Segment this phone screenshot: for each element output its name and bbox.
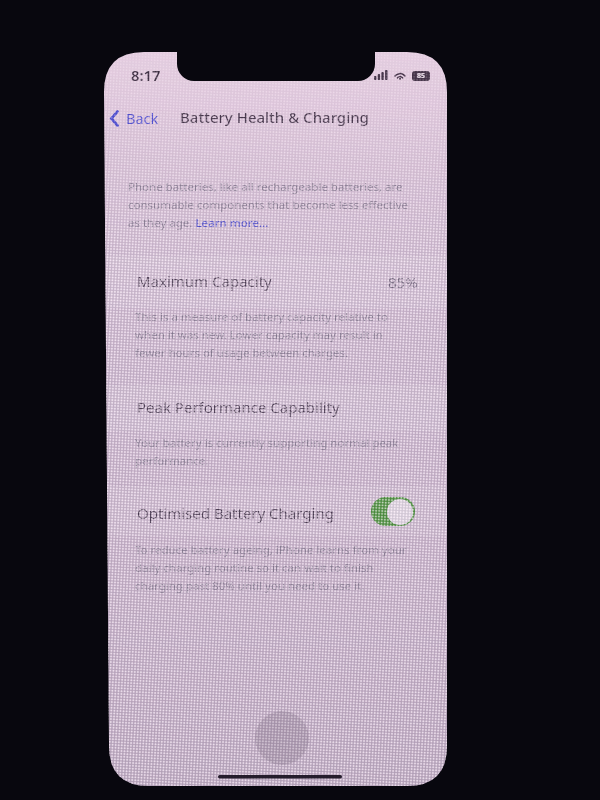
button[interactable]: Maximum Capacity (106, 256, 447, 308)
staticText: 8:17 (131, 65, 161, 85)
staticText: To reduce battery ageing, iPhone learns … (135, 542, 413, 594)
staticText: Your battery is currently supporting nor… (135, 435, 407, 469)
staticText: Back (126, 108, 159, 128)
staticText: Optimised Battery Charging (137, 503, 334, 523)
button[interactable]: Optimised Battery Charging toggle (371, 497, 415, 526)
staticText: Maximum Capacity (137, 271, 272, 291)
staticText: Phone batteries, like all rechargeable b… (128, 179, 412, 231)
staticText: Peak Performance Capability (137, 397, 340, 417)
staticText: 85 (417, 71, 426, 81)
staticText: 85% (388, 272, 418, 292)
button[interactable]: Back (109, 105, 159, 131)
staticText: This is a measure of battery capacity re… (135, 309, 407, 361)
staticText: Battery Health & Charging (180, 107, 369, 127)
button[interactable]: Optimised Battery Charging (106, 486, 447, 536)
button[interactable]: Peak Performance Capability (106, 385, 447, 431)
